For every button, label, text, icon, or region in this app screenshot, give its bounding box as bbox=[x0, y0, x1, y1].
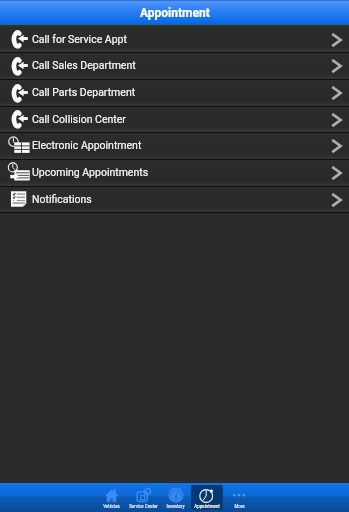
staticText: Notifications bbox=[32, 193, 332, 205]
button[interactable]: Upcoming Appointments bbox=[0, 160, 349, 186]
button[interactable]: Inventory bbox=[159, 485, 191, 510]
other: Appointment bbox=[199, 487, 215, 503]
button[interactable]: Service Center bbox=[127, 485, 159, 510]
button[interactable]: Electronic Appointment bbox=[0, 133, 349, 159]
staticText: More bbox=[234, 503, 245, 509]
staticText: Call Sales Department bbox=[32, 59, 332, 71]
button[interactable]: Notifications bbox=[0, 187, 349, 212]
other: Service Center bbox=[136, 487, 152, 503]
button[interactable]: Call Sales Department bbox=[0, 53, 349, 79]
staticText: Inventory bbox=[166, 503, 185, 509]
staticText: Call Collision Center bbox=[32, 113, 332, 125]
staticText: Service Center bbox=[129, 503, 158, 509]
button[interactable]: Call Collision Center bbox=[0, 107, 349, 132]
button[interactable]: Vehicles bbox=[95, 485, 127, 510]
staticText: Call Parts Department bbox=[32, 86, 332, 98]
button[interactable]: Call Parts Department bbox=[0, 80, 349, 106]
other: More bbox=[231, 487, 247, 503]
other: Vehicles bbox=[104, 487, 120, 503]
button[interactable]: Call for Service Appt bbox=[0, 27, 349, 52]
staticText: Electronic Appointment bbox=[32, 139, 332, 151]
staticText: Appointment bbox=[194, 503, 220, 509]
staticText: Vehicles bbox=[103, 503, 120, 509]
staticText: Appointment bbox=[140, 6, 210, 20]
staticText: Call for Service Appt bbox=[32, 33, 332, 45]
button[interactable]: More bbox=[223, 485, 255, 510]
button[interactable]: Appointment bbox=[191, 485, 223, 510]
other: Inventory bbox=[168, 487, 184, 503]
staticText: Upcoming Appointments bbox=[32, 166, 332, 178]
